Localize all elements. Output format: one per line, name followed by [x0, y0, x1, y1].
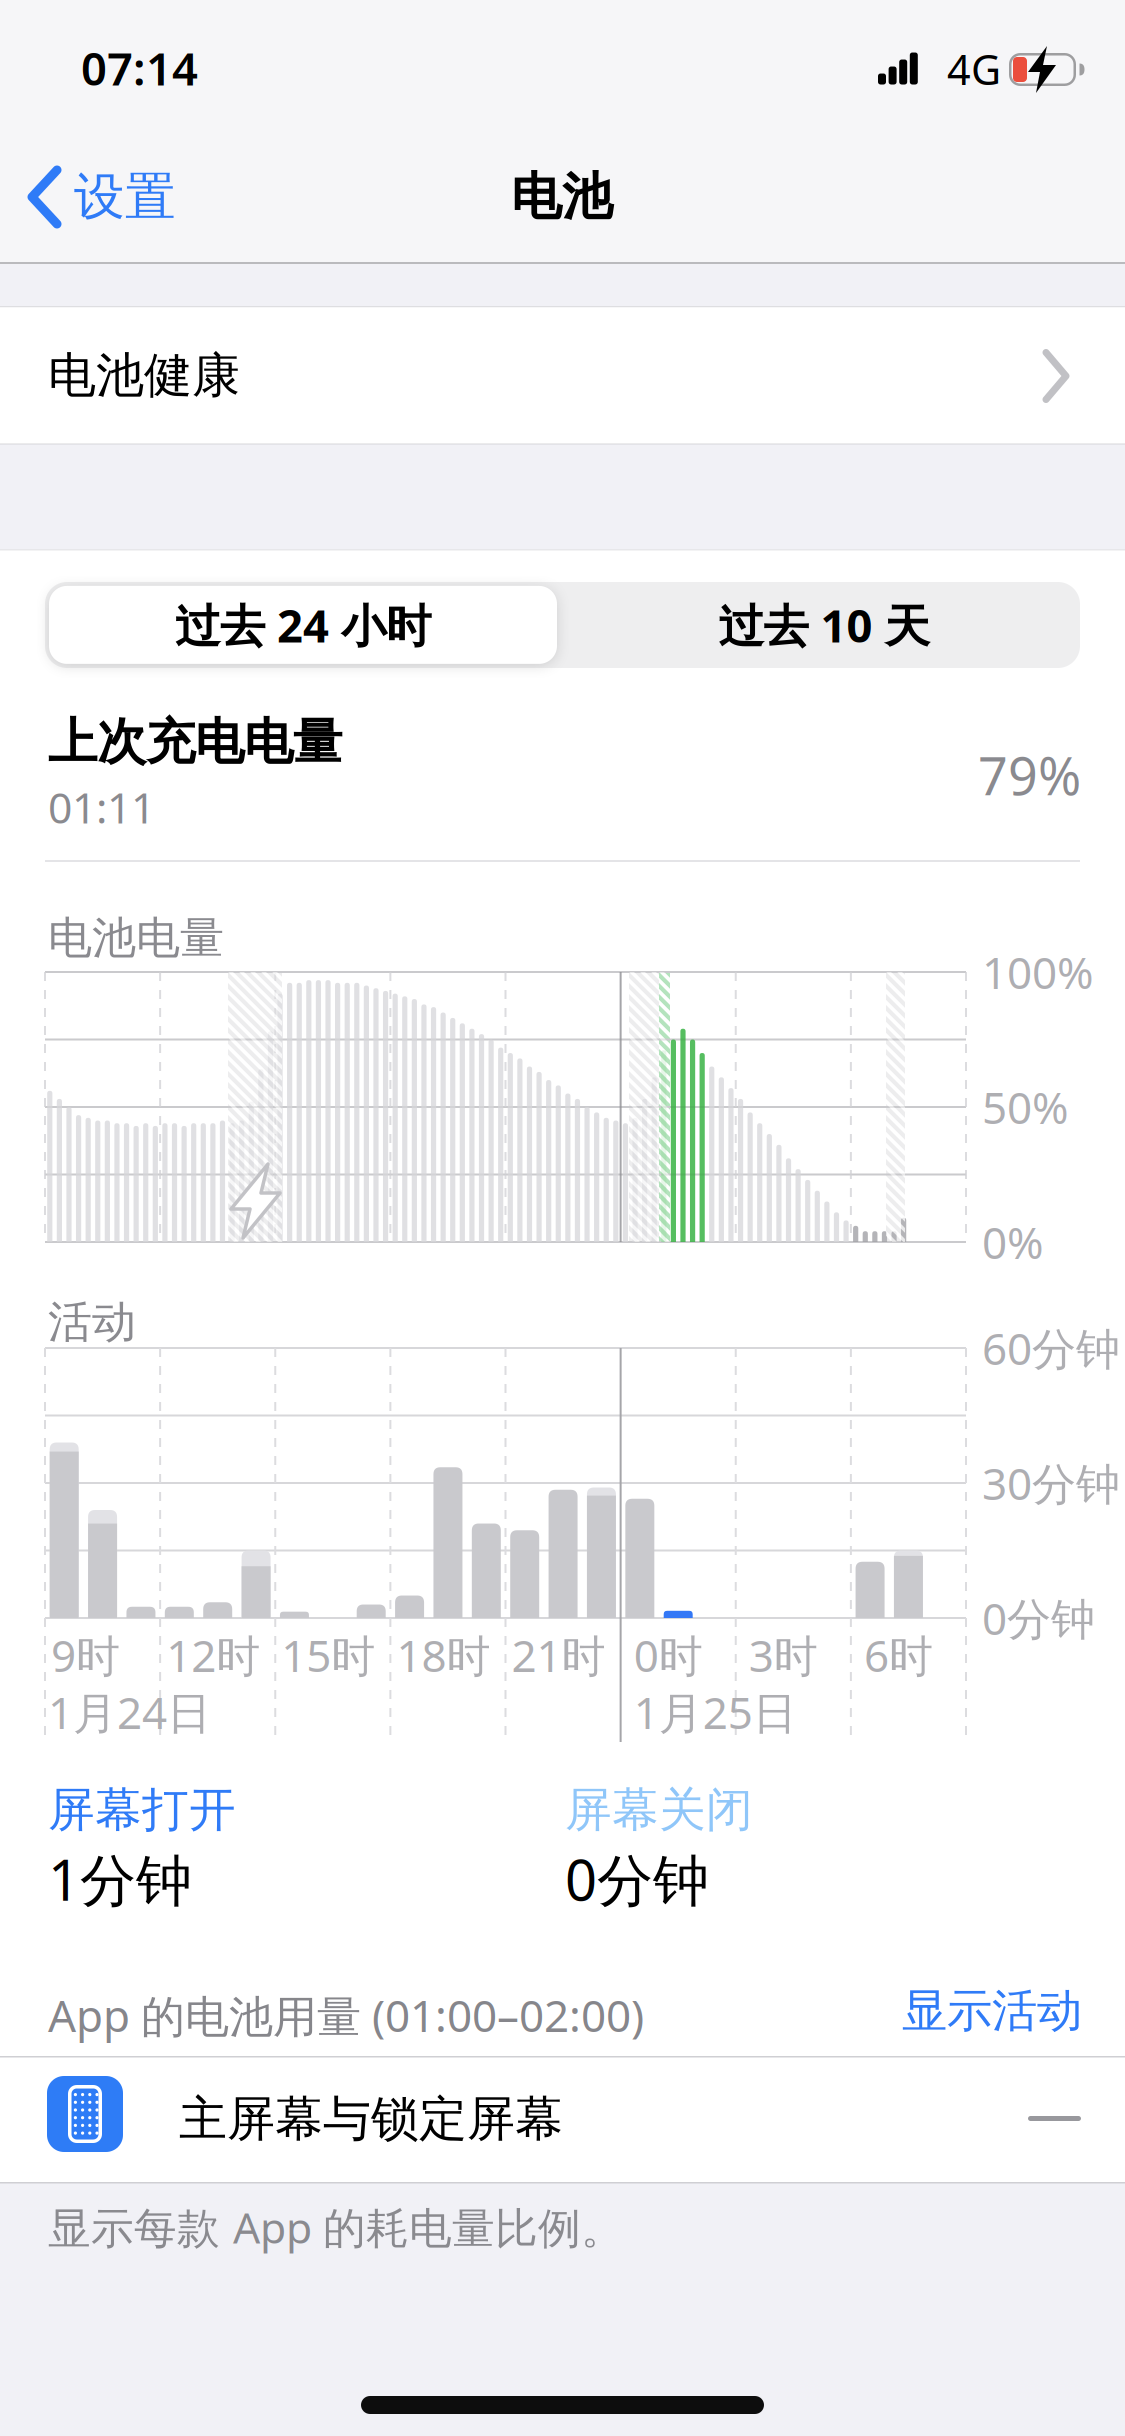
- staticText: 设置: [74, 166, 176, 228]
- button[interactable]: 显示活动: [821, 1980, 1081, 2050]
- staticText: 1月24日: [48, 1683, 211, 1741]
- staticText: 100%: [982, 943, 1094, 1001]
- staticText: 0分钟: [982, 1589, 1095, 1647]
- staticText: 0时: [634, 1626, 703, 1684]
- staticText: 电池: [511, 166, 613, 228]
- staticText: 过去 24 小时: [175, 595, 431, 655]
- staticText: 15时: [281, 1626, 375, 1684]
- staticText: 60分钟: [982, 1319, 1120, 1377]
- staticText: 21时: [511, 1626, 605, 1684]
- staticText: 活动: [48, 1295, 136, 1349]
- staticText: 12时: [166, 1626, 260, 1684]
- staticText: 0分钟: [565, 1842, 709, 1916]
- staticText: 1分钟: [48, 1842, 192, 1916]
- staticText: 过去 10 天: [718, 595, 929, 655]
- button[interactable]: 主屏幕与锁定屏幕: [0, 2058, 1125, 2182]
- staticText: 屏幕关闭: [565, 1781, 753, 1839]
- button[interactable]: 过去 10 天: [559, 586, 1079, 664]
- staticText: 50%: [982, 1078, 1069, 1136]
- staticText: 0%: [982, 1213, 1044, 1271]
- button[interactable]: 设置: [0, 142, 280, 252]
- staticText: 30分钟: [982, 1454, 1120, 1512]
- staticText: 01:11: [48, 779, 155, 835]
- staticText: 1月25日: [634, 1683, 797, 1741]
- staticText: 上次充电电量: [48, 712, 342, 772]
- staticText: 9时: [51, 1626, 120, 1684]
- staticText: 电池健康: [48, 346, 240, 405]
- staticText: 79%: [978, 740, 1081, 810]
- staticText: 主屏幕与锁定屏幕: [179, 2089, 563, 2148]
- button[interactable]: 电池健康: [0, 307, 1125, 443]
- staticText: 18时: [396, 1626, 490, 1684]
- staticText: 显示活动: [902, 1983, 1082, 2039]
- staticText: 屏幕打开: [48, 1781, 236, 1839]
- staticText: 4G: [947, 42, 1001, 96]
- staticText: 6时: [864, 1626, 933, 1684]
- button[interactable]: 过去 24 小时: [49, 586, 557, 664]
- staticText: 3时: [749, 1626, 818, 1684]
- staticText: 显示每款 App 的耗电量比例。: [48, 2199, 624, 2255]
- staticText: 电池电量: [48, 911, 224, 965]
- staticText: App 的电池用量 (01:00–02:00): [48, 1986, 644, 2044]
- staticText: 07:14: [81, 38, 198, 98]
